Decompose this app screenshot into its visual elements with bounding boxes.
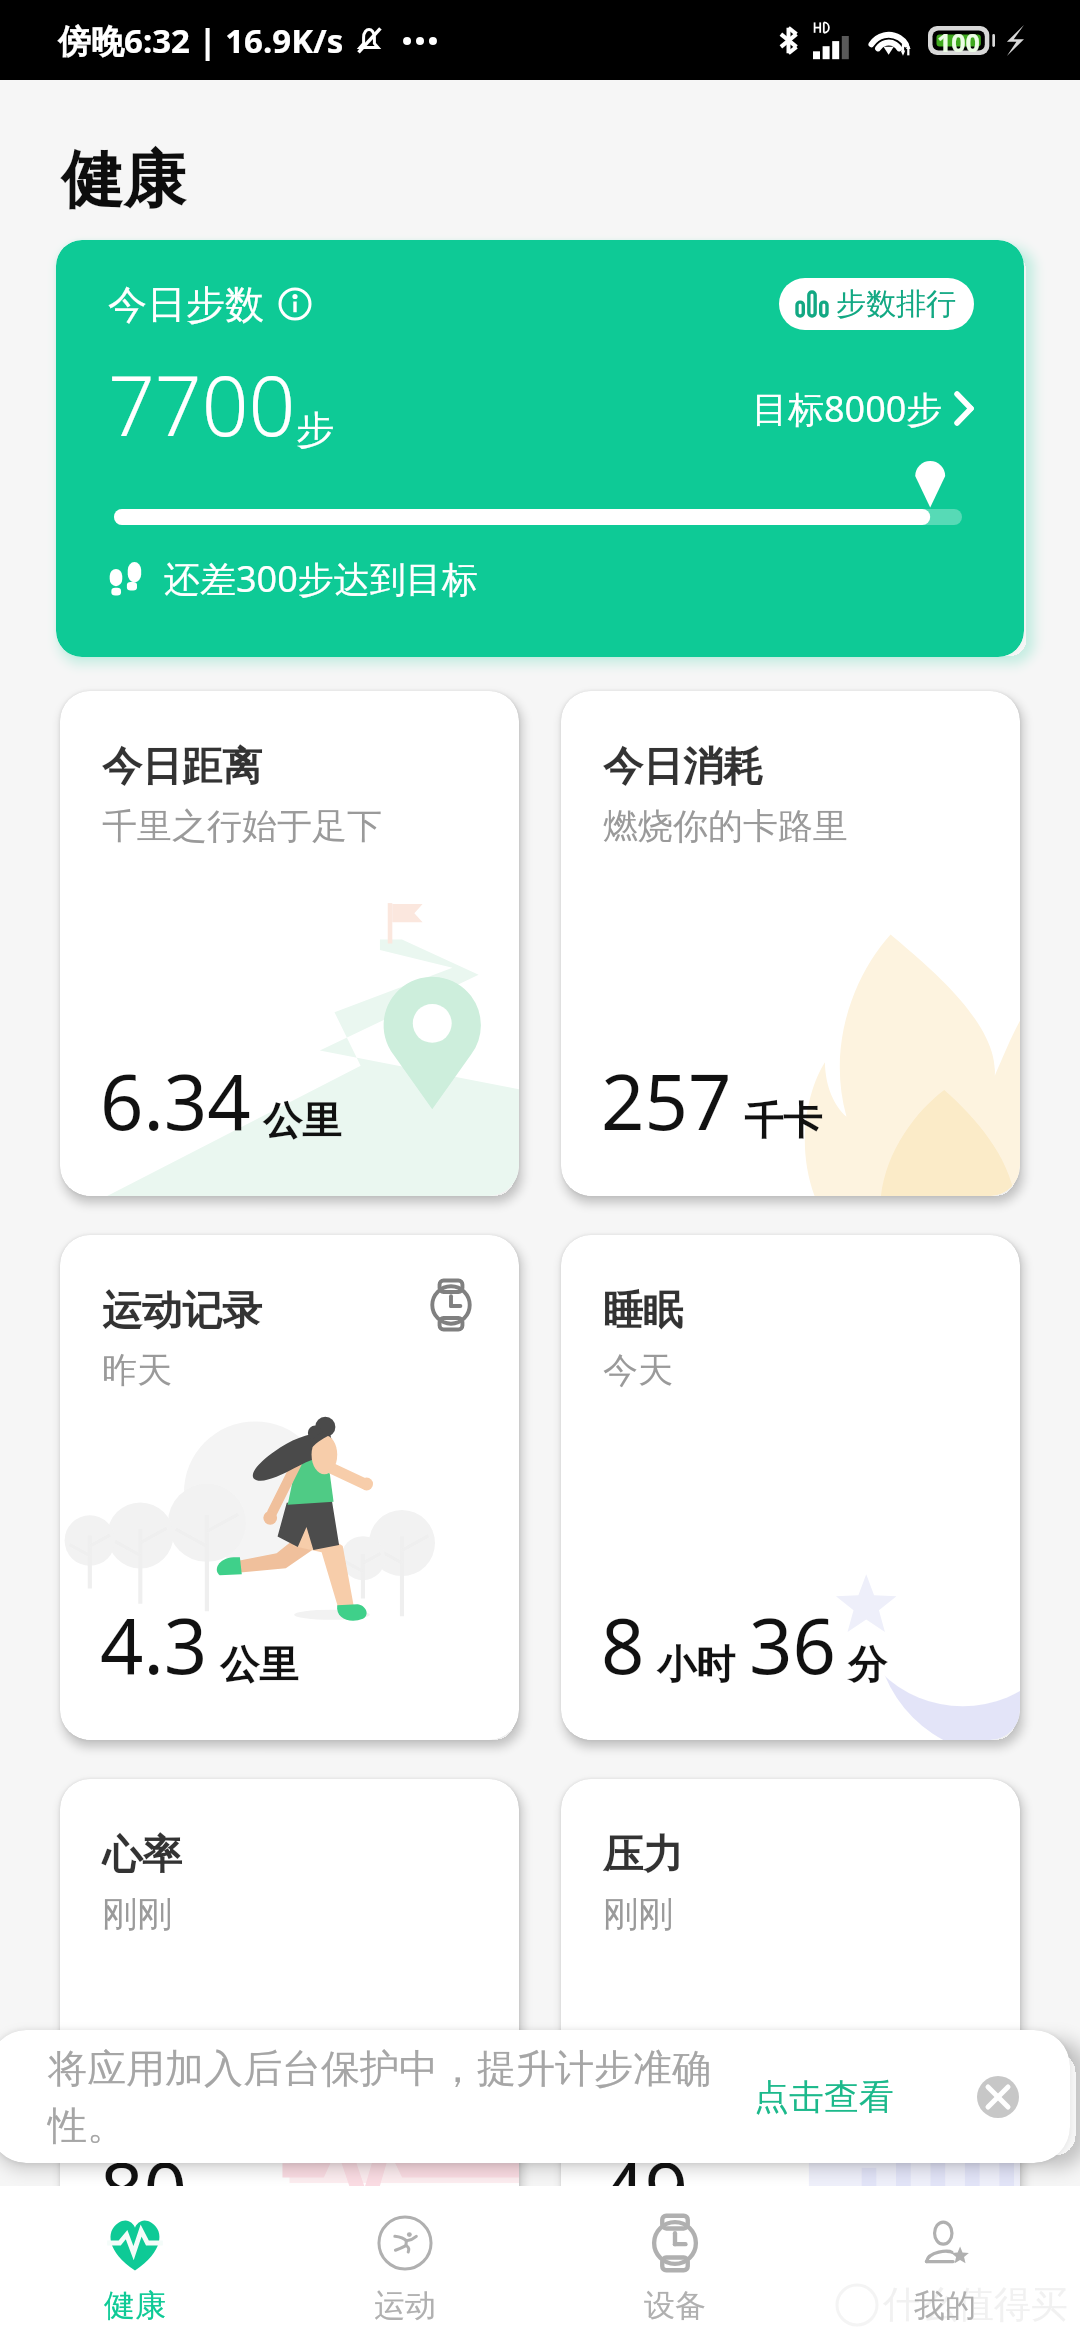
staticText: 压力	[603, 1829, 683, 1879]
staticText: 什么值得买	[883, 2281, 1068, 2328]
button[interactable]: 步数排行	[779, 278, 974, 330]
staticText: 燃烧你的卡路里	[603, 804, 848, 848]
button[interactable]: 心率	[60, 1779, 519, 2284]
staticText: 257	[601, 1049, 732, 1153]
button[interactable]: 健康	[0, 2186, 270, 2325]
staticText: 昨天	[102, 1348, 172, 1392]
staticText: 目标8000步	[752, 384, 943, 433]
staticText: 运动记录	[102, 1285, 262, 1335]
staticText: 傍晚6:32 | 16.9K/s	[58, 18, 344, 63]
staticText: 睡眠	[603, 1285, 683, 1335]
staticText: 36	[749, 1593, 836, 1697]
staticText: 健康	[104, 2286, 166, 2325]
button[interactable]: 我的	[810, 2186, 1080, 2325]
staticText: 6.34	[100, 1049, 251, 1153]
button[interactable]: 睡眠	[561, 1235, 1020, 1740]
staticText: 8	[601, 1593, 645, 1697]
staticText: 设备	[644, 2286, 706, 2325]
button[interactable]: 设备	[540, 2186, 810, 2325]
staticText: 公里	[220, 1640, 298, 1689]
staticText: 49	[601, 2137, 688, 2241]
staticText: 步	[296, 406, 334, 454]
staticText: 小时	[657, 1640, 735, 1689]
staticText: 刚刚	[102, 1892, 172, 1936]
staticText: 还差300步达到目标	[164, 554, 478, 603]
staticText: 分	[848, 1640, 887, 1689]
staticText: 千里之行始于足下	[102, 804, 382, 848]
staticText: 今日步数	[108, 280, 264, 329]
staticText: 100	[937, 25, 980, 54]
button[interactable]: 运动	[270, 2186, 540, 2325]
staticText: 健康	[61, 141, 185, 219]
button[interactable]: 今日距离	[60, 691, 519, 1196]
staticText: 刚刚	[603, 1892, 673, 1936]
button[interactable]: 运动记录	[60, 1235, 519, 1740]
staticText: 4.3	[100, 1593, 208, 1697]
staticText: 公里	[263, 1096, 341, 1145]
staticText: 我的	[914, 2286, 976, 2325]
button[interactable]: 压力	[561, 1779, 1020, 2284]
button[interactable]: 目标8000步	[752, 384, 974, 433]
button[interactable]: Close	[977, 2076, 1019, 2118]
staticText: 心率	[102, 1829, 182, 1879]
button[interactable]: 今日消耗	[561, 691, 1020, 1196]
staticText: 千卡	[744, 1096, 822, 1145]
staticText: 今日距离	[102, 741, 262, 791]
staticText: 步数排行	[836, 285, 956, 323]
staticText: 将应用加入后台保护中，提升计步准确 性。	[48, 2044, 711, 2150]
staticText: 运动	[374, 2286, 436, 2325]
staticText: 今天	[603, 1348, 673, 1392]
button[interactable]: 点击查看	[754, 2075, 894, 2119]
button[interactable]: 今日步数	[56, 240, 1024, 657]
staticText: 80	[100, 2137, 187, 2241]
staticText: 今日消耗	[603, 741, 763, 791]
staticText: 7700	[108, 348, 296, 460]
